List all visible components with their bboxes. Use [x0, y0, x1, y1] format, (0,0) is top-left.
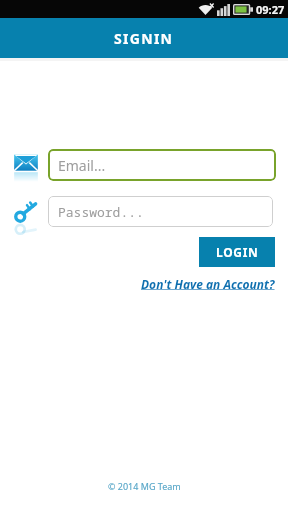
button[interactable]: LOGIN: [199, 237, 275, 267]
button[interactable]: Don't Have an Account?: [141, 276, 275, 292]
button[interactable]: Email...: [48, 149, 276, 181]
staticText: Email...: [58, 156, 106, 175]
other: Password: [10, 197, 42, 231]
staticText: LOGIN: [216, 244, 259, 260]
button[interactable]: Password...: [48, 196, 273, 227]
other: Email: [10, 151, 42, 187]
staticText: SIGNIN: [114, 29, 174, 48]
staticText: © 2014 MG Team: [108, 480, 181, 492]
staticText: Don't Have an Account?: [141, 276, 275, 292]
staticText: Password...: [58, 203, 144, 221]
staticText: 09:27: [256, 2, 285, 17]
